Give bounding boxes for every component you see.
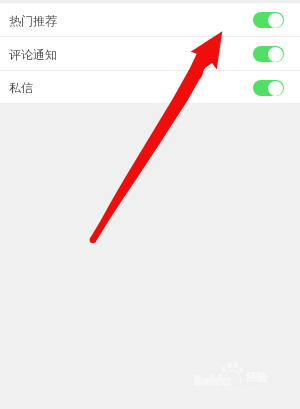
button[interactable]: Toggle 热门推荐 (253, 12, 284, 28)
button[interactable]: 热门推荐 (0, 3, 300, 37)
button[interactable]: 评论通知 (0, 37, 300, 71)
staticText: 评论通知 (9, 47, 57, 62)
staticText: 私信 (9, 80, 33, 95)
staticText: 经验 (246, 371, 267, 384)
button[interactable]: Toggle 私信 (253, 80, 284, 96)
staticText: Baidu (194, 371, 231, 389)
staticText: 热门推荐 (9, 13, 57, 28)
button[interactable]: Toggle 评论通知 (253, 46, 284, 62)
button[interactable]: 私信 (0, 71, 300, 104)
